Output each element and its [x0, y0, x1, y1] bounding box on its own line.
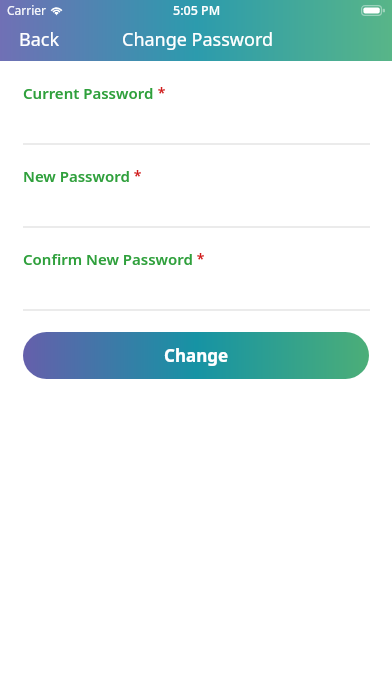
staticText: Change [164, 344, 229, 367]
staticText: New Password [23, 166, 130, 186]
button[interactable]: Current Password [0, 83, 392, 166]
staticText: Back [19, 27, 60, 52]
staticText: Carrier [7, 2, 47, 18]
staticText: Current Password [23, 83, 154, 103]
staticText: * [154, 83, 166, 102]
button[interactable]: Back [0, 21, 79, 58]
staticText: Change Password [122, 27, 274, 52]
button[interactable]: Change [23, 332, 369, 379]
button[interactable]: New Password [0, 166, 392, 249]
button[interactable]: Confirm New Password [0, 249, 392, 332]
staticText: Confirm New Password [23, 249, 193, 269]
other: Wi-Fi signal [49, 4, 64, 16]
staticText: * [193, 249, 205, 268]
other: Battery full [361, 5, 385, 16]
staticText: 5:05 PM [173, 2, 221, 19]
staticText: * [130, 166, 142, 185]
